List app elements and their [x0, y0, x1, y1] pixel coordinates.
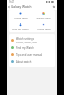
button[interactable]: Watch settings	[9, 37, 55, 44]
staticText: Watch faces	[14, 16, 28, 19]
button[interactable]: Find my Watch	[9, 44, 55, 51]
staticText: Galaxy Store	[36, 16, 51, 19]
button[interactable]: Search	[52, 5, 56, 9]
staticText: Watch settings	[16, 37, 34, 41]
staticText: About watch	[16, 60, 32, 64]
button[interactable]: Tips and user manual	[9, 51, 55, 58]
staticText: Watch faces	[37, 27, 51, 30]
button[interactable]: About watch	[9, 58, 55, 65]
staticText: Tips and user manual	[16, 53, 43, 57]
button[interactable]: Back	[7, 5, 11, 9]
button[interactable]: Watch faces	[9, 10, 32, 21]
button[interactable]: Find My Watch	[9, 21, 32, 32]
staticText: Galaxy Watch	[11, 5, 32, 9]
button[interactable]: Galaxy Store	[32, 10, 55, 21]
staticText: Sounds, display, apps	[16, 41, 38, 44]
staticText: Find My Watch	[12, 27, 29, 30]
button[interactable]: Watch faces	[32, 21, 55, 32]
staticText: 9:41	[9, 0, 15, 4]
staticText: Find my Watch	[16, 46, 34, 50]
